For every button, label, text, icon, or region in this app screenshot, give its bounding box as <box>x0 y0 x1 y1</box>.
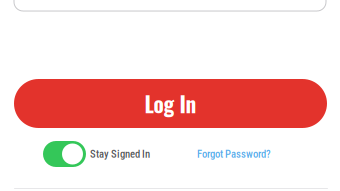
staticText: Log In <box>144 88 196 119</box>
button[interactable]: Stay Signed In <box>43 141 150 167</box>
button[interactable]: Log In <box>14 79 327 128</box>
staticText: Stay Signed In <box>90 148 150 160</box>
button[interactable]: Forgot Password? <box>197 148 271 160</box>
staticText: Forgot Password? <box>197 148 271 160</box>
